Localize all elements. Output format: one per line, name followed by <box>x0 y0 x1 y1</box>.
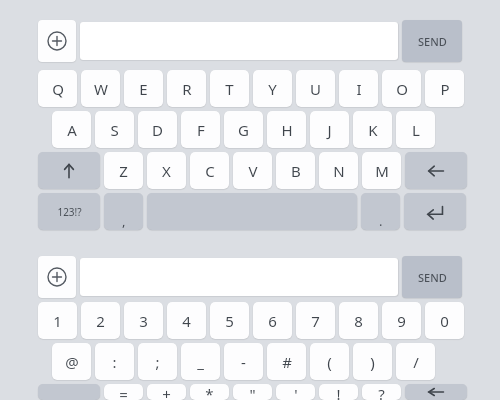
button[interactable]: 9 <box>382 302 421 339</box>
staticText: Y <box>268 79 277 99</box>
button[interactable]: Z <box>104 152 143 189</box>
button[interactable]: S <box>95 111 134 148</box>
button[interactable]: C <box>190 152 229 189</box>
staticText: W <box>94 79 108 99</box>
button[interactable]: ? <box>362 384 401 400</box>
button[interactable]: 7 <box>296 302 335 339</box>
button[interactable]: B <box>276 152 315 189</box>
staticText: 4 <box>182 311 191 331</box>
button[interactable]: SEND <box>402 256 462 298</box>
button[interactable]: M <box>362 152 401 189</box>
button[interactable]: X <box>147 152 186 189</box>
button[interactable]: 2 <box>81 302 120 339</box>
staticText: M <box>375 161 389 181</box>
button[interactable]: Backspace <box>405 152 467 189</box>
staticText: ? <box>378 384 385 400</box>
button[interactable]: SEND <box>402 20 462 62</box>
staticText: 7 <box>311 311 320 331</box>
button[interactable]: U <box>296 70 335 107</box>
button[interactable]: Y <box>253 70 292 107</box>
button[interactable]: W <box>81 70 120 107</box>
button[interactable]: 3 <box>124 302 163 339</box>
button[interactable]: ' <box>276 384 315 400</box>
button[interactable]: 6 <box>253 302 292 339</box>
button[interactable]: Backspace <box>405 384 467 400</box>
button[interactable]: O <box>382 70 421 107</box>
staticText: 0 <box>440 311 449 331</box>
button[interactable]: G <box>224 111 263 148</box>
button[interactable]: A <box>52 111 91 148</box>
staticText: @ <box>65 352 79 372</box>
button[interactable]: Shift <box>38 152 100 189</box>
button[interactable]: 5 <box>210 302 249 339</box>
staticText: - <box>241 352 246 372</box>
staticText: ' <box>294 384 298 400</box>
staticText: G <box>238 120 249 140</box>
button[interactable]: H <box>267 111 306 148</box>
button[interactable]: E <box>124 70 163 107</box>
button[interactable]: R <box>167 70 206 107</box>
button[interactable]: K <box>353 111 392 148</box>
staticText: 9 <box>397 311 406 331</box>
staticText: U <box>310 79 321 99</box>
button[interactable]: Q <box>38 70 77 107</box>
staticText: C <box>205 161 215 181</box>
staticText: B <box>291 161 301 181</box>
staticText: 5 <box>225 311 234 331</box>
button[interactable]: Add attachment <box>38 20 76 62</box>
button[interactable]: _ <box>181 343 220 380</box>
button[interactable]: : <box>95 343 134 380</box>
button[interactable]: N <box>319 152 358 189</box>
staticText: Z <box>119 161 128 181</box>
button[interactable]: Enter <box>404 193 466 230</box>
button[interactable]: + <box>147 384 186 400</box>
button[interactable]: * <box>190 384 229 400</box>
staticText: + <box>162 384 171 400</box>
button[interactable]: - <box>224 343 263 380</box>
button[interactable]: @ <box>52 343 91 380</box>
button[interactable]: ! <box>319 384 358 400</box>
button[interactable]: V <box>233 152 272 189</box>
button[interactable]: ( <box>310 343 349 380</box>
staticText: A <box>67 120 77 140</box>
staticText: T <box>225 79 234 99</box>
button[interactable]: I <box>339 70 378 107</box>
button[interactable]: = <box>104 384 143 400</box>
staticText: F <box>197 120 205 140</box>
staticText: 2 <box>96 311 105 331</box>
button[interactable]: P <box>425 70 464 107</box>
staticText: 3 <box>139 311 148 331</box>
button[interactable]: ) <box>353 343 392 380</box>
staticText: , <box>122 212 126 230</box>
staticText: H <box>281 120 293 140</box>
staticText: V <box>248 161 258 181</box>
button[interactable]: Comma <box>104 193 143 230</box>
staticText: I <box>356 79 362 99</box>
button[interactable]: Period <box>361 193 400 230</box>
button[interactable]: ; <box>138 343 177 380</box>
button[interactable]: J <box>310 111 349 148</box>
staticText: P <box>440 79 450 99</box>
button[interactable]: Add attachment <box>38 256 76 298</box>
button[interactable]: / <box>396 343 435 380</box>
button[interactable]: 4 <box>167 302 206 339</box>
button[interactable]: 8 <box>339 302 378 339</box>
button[interactable]: F <box>181 111 220 148</box>
button[interactable]: 123!? <box>38 193 100 230</box>
button[interactable]: # <box>267 343 306 380</box>
button[interactable]: 0 <box>425 302 464 339</box>
staticText: : <box>112 352 117 372</box>
staticText: K <box>368 120 378 140</box>
button[interactable]: T <box>210 70 249 107</box>
staticText: / <box>413 352 419 372</box>
button[interactable]: D <box>138 111 177 148</box>
staticText: . <box>379 212 383 230</box>
button[interactable]: " <box>233 384 272 400</box>
button[interactable]: 1 <box>38 302 77 339</box>
button[interactable]: L <box>396 111 435 148</box>
staticText: 1 <box>53 311 62 331</box>
